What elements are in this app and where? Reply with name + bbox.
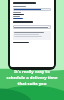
staticText: that suits you [4, 81, 60, 87]
button[interactable]: Select delivery time [13, 25, 51, 29]
button[interactable]: Address field [13, 8, 51, 11]
staticText: It's really easy to [4, 69, 60, 75]
staticText: schedule a delivery time [4, 75, 60, 81]
